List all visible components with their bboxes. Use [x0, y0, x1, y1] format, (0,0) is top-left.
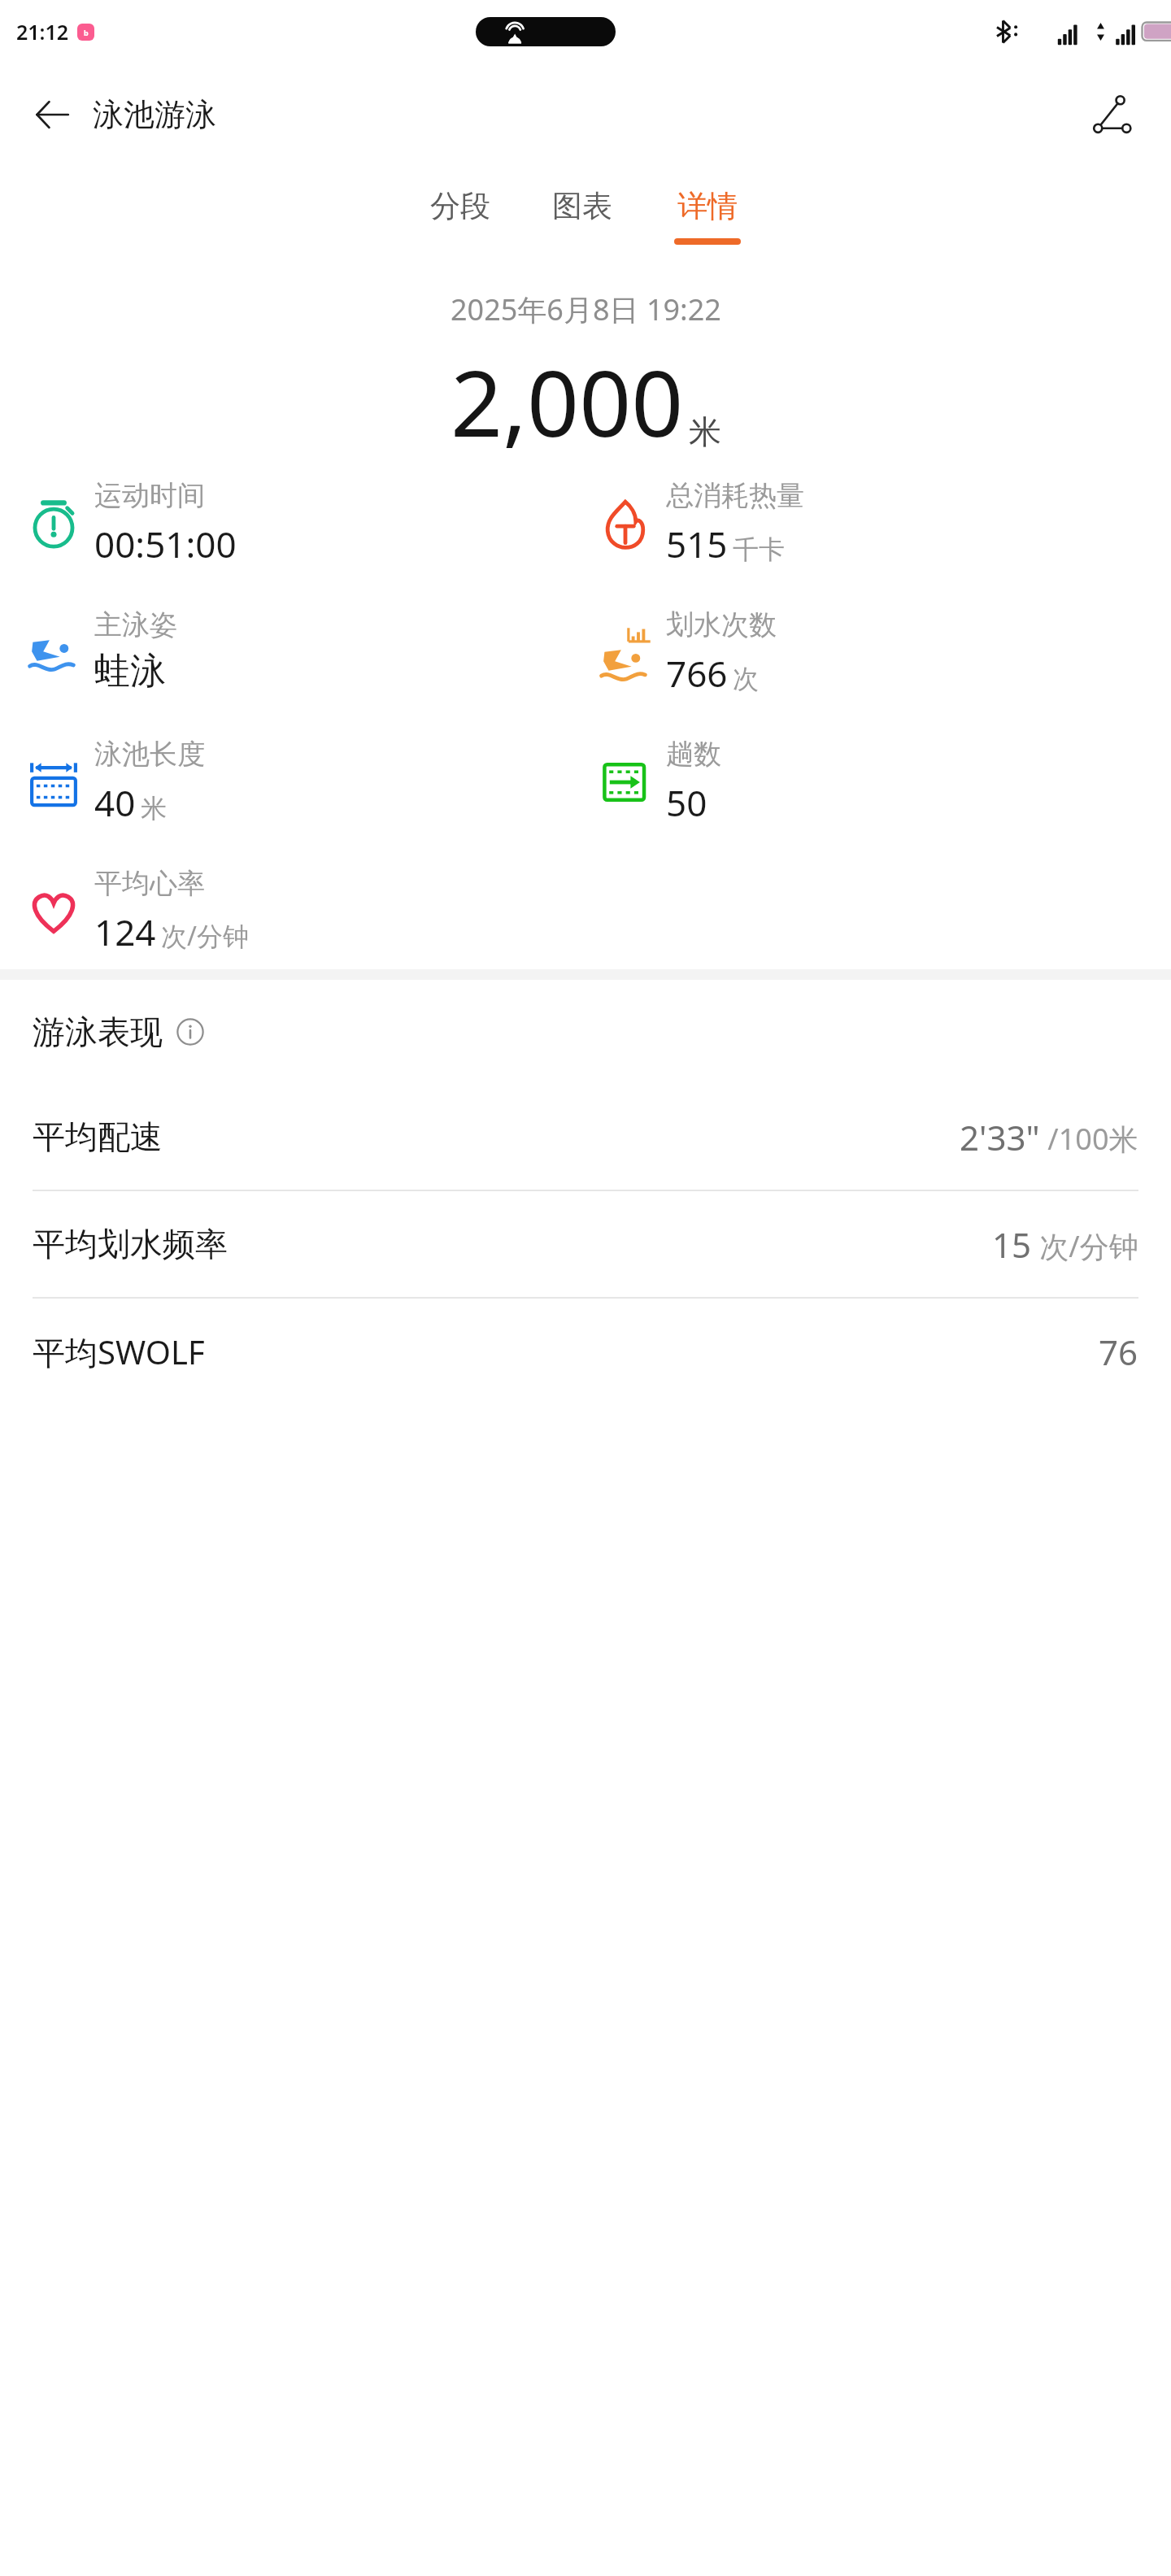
staticText: 次/分钟 [161, 918, 249, 954]
staticText: 米 [141, 792, 167, 825]
button[interactable]: 详情 [666, 166, 749, 245]
staticText: 40 [94, 778, 136, 827]
staticText: 2,000 [451, 339, 684, 463]
staticText: 次 [733, 663, 759, 695]
button[interactable]: Back [23, 85, 81, 144]
button[interactable]: Info [174, 1016, 207, 1048]
staticText: 766 [666, 649, 728, 698]
staticText: 分段 [430, 187, 490, 225]
staticText: 蛙泳 [94, 649, 166, 694]
staticText: 图表 [552, 187, 612, 225]
staticText: 米 [689, 411, 721, 452]
staticText: 124 [94, 907, 156, 956]
button[interactable]: 平均配速 [0, 1084, 1171, 1191]
button[interactable]: 平均划水频率 [0, 1191, 1171, 1299]
staticText: 主泳姿 [94, 607, 177, 642]
button[interactable]: 泳池长度 [28, 737, 599, 827]
staticText: 划水次数 [666, 607, 777, 642]
button[interactable]: 平均SWOLF [0, 1299, 1171, 1404]
staticText: 总消耗热量 [666, 478, 804, 513]
staticText: 15 [992, 1221, 1032, 1268]
staticText: 515 [666, 520, 728, 568]
staticText: 21:12 [16, 18, 69, 46]
staticText: 00:51:00 [94, 520, 237, 568]
staticText: 千卡 [733, 533, 785, 566]
staticText: 平均配速 [33, 1116, 163, 1157]
staticText: 运动时间 [94, 478, 205, 513]
staticText: 游泳表现 [33, 1012, 163, 1052]
staticText: /100米 [1040, 1119, 1138, 1159]
button[interactable]: 运动时间 [28, 478, 599, 568]
button[interactable]: 主泳姿 [28, 607, 599, 694]
staticText: 平均SWOLF [33, 1329, 205, 1374]
staticText: 平均心率 [94, 866, 205, 901]
staticText: 泳池长度 [94, 737, 205, 772]
button[interactable]: 图表 [544, 166, 620, 238]
button[interactable]: 平均心率 [28, 866, 599, 956]
staticText: 详情 [677, 187, 738, 225]
staticText: 次/分钟 [1032, 1226, 1138, 1266]
staticText: 2'33" [960, 1114, 1040, 1160]
staticText: 平均划水频率 [33, 1224, 228, 1264]
button[interactable]: 趟数 [599, 737, 1171, 827]
button[interactable]: 划水次数 [599, 607, 1171, 698]
button[interactable]: Share [1082, 84, 1143, 146]
staticText: b [84, 28, 89, 37]
staticText: 泳池游泳 [93, 95, 216, 134]
staticText: 2025年6月8日 19:22 [451, 289, 721, 329]
button[interactable]: 总消耗热量 [599, 478, 1171, 568]
staticText: 76 [1099, 1329, 1138, 1375]
button[interactable]: 分段 [422, 166, 498, 238]
staticText: 趟数 [666, 737, 721, 772]
staticText: 50 [666, 778, 707, 827]
